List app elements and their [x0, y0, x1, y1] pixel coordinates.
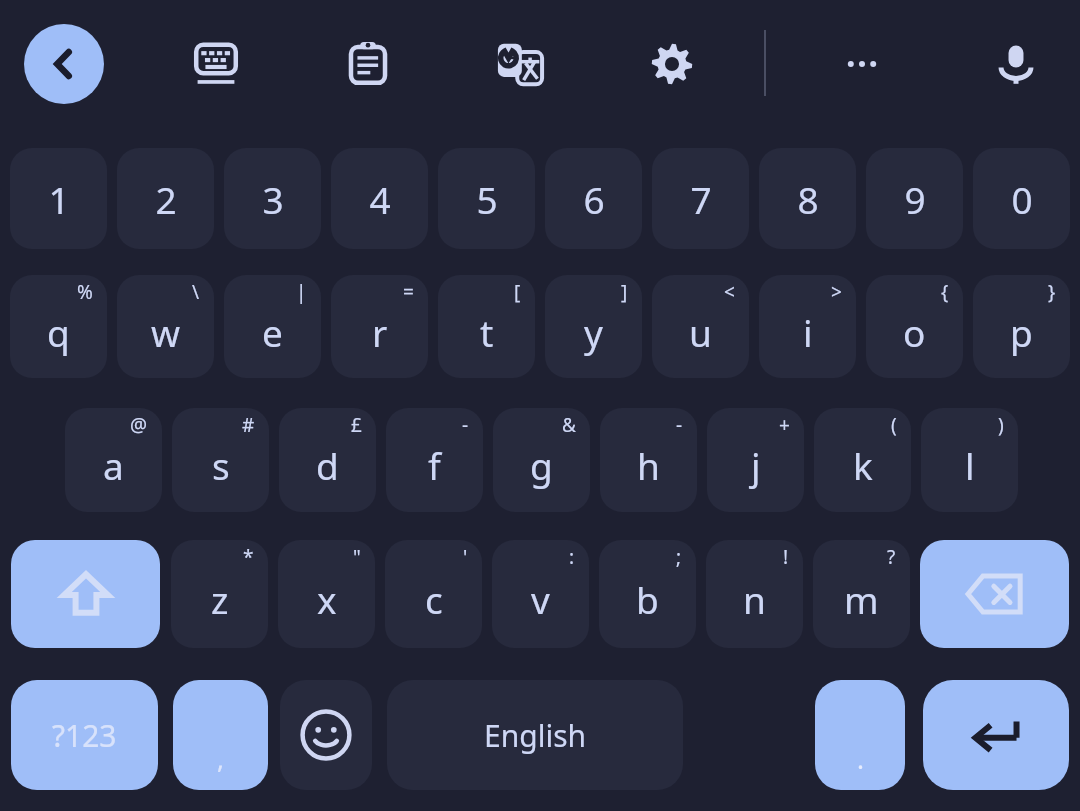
button[interactable]: English: [387, 680, 683, 790]
staticText: |: [296, 279, 307, 305]
button[interactable]: y: [545, 275, 642, 378]
staticText: %: [77, 279, 93, 305]
staticText: 7: [690, 174, 712, 224]
staticText: [: [514, 279, 521, 305]
staticText: 5: [476, 174, 498, 224]
staticText: ?: [887, 544, 896, 570]
button[interactable]: n: [706, 540, 803, 648]
button[interactable]: 2: [117, 148, 214, 249]
staticText: !: [783, 544, 789, 570]
button[interactable]: ?123: [11, 680, 158, 790]
staticText: &: [562, 412, 576, 438]
button[interactable]: 9: [866, 148, 963, 249]
button[interactable]: 1: [10, 148, 107, 249]
staticText: ;: [676, 544, 682, 570]
button[interactable]: 3: [224, 148, 321, 249]
staticText: c: [425, 574, 443, 624]
button[interactable]: f: [386, 408, 483, 512]
button[interactable]: Clipboard: [328, 24, 408, 104]
staticText: ]: [621, 279, 628, 305]
button[interactable]: Keyboard: [176, 24, 256, 104]
staticText: w: [151, 307, 181, 357]
staticText: *: [243, 544, 254, 570]
button[interactable]: j: [707, 408, 804, 512]
button[interactable]: v: [492, 540, 589, 648]
button[interactable]: a: [65, 408, 162, 512]
staticText: 6: [583, 174, 605, 224]
staticText: <: [724, 279, 735, 305]
button[interactable]: t: [438, 275, 535, 378]
button[interactable]: 0: [973, 148, 1070, 249]
staticText: -: [462, 412, 469, 438]
staticText: a: [103, 440, 124, 490]
button[interactable]: 8: [759, 148, 856, 249]
button[interactable]: Emoji: [280, 680, 372, 790]
staticText: .: [857, 741, 864, 776]
staticText: {: [941, 279, 949, 305]
staticText: 1: [48, 174, 70, 224]
button[interactable]: 6: [545, 148, 642, 249]
staticText: }: [1048, 279, 1056, 305]
staticText: i: [803, 307, 813, 357]
staticText: g: [530, 440, 553, 490]
button[interactable]: w: [117, 275, 214, 378]
button[interactable]: b: [599, 540, 696, 648]
staticText: =: [403, 279, 414, 305]
staticText: 9: [904, 174, 926, 224]
button[interactable]: 7: [652, 148, 749, 249]
button[interactable]: p: [973, 275, 1070, 378]
staticText: #: [242, 412, 255, 438]
staticText: x: [317, 574, 337, 624]
staticText: r: [372, 307, 388, 357]
button[interactable]: 5: [438, 148, 535, 249]
button[interactable]: g: [493, 408, 590, 512]
staticText: ): [998, 412, 1004, 438]
staticText: e: [262, 307, 283, 357]
button[interactable]: .: [815, 680, 905, 790]
staticText: 0: [1011, 174, 1033, 224]
button[interactable]: q: [10, 275, 107, 378]
button[interactable]: r: [331, 275, 428, 378]
staticText: l: [965, 440, 975, 490]
staticText: z: [211, 574, 229, 624]
staticText: ': [463, 544, 468, 570]
staticText: o: [903, 307, 926, 357]
button[interactable]: Translate: [480, 24, 560, 104]
button[interactable]: Enter: [923, 680, 1069, 790]
button[interactable]: Voice input: [976, 24, 1056, 104]
staticText: >: [831, 279, 842, 305]
button[interactable]: Backspace: [920, 540, 1069, 648]
button[interactable]: o: [866, 275, 963, 378]
staticText: d: [316, 440, 339, 490]
button[interactable]: k: [814, 408, 911, 512]
button[interactable]: More options: [822, 24, 902, 104]
staticText: y: [584, 307, 603, 357]
button[interactable]: d: [279, 408, 376, 512]
staticText: £: [351, 412, 362, 438]
staticText: ": [353, 544, 361, 570]
button[interactable]: m: [813, 540, 910, 648]
staticText: n: [743, 574, 766, 624]
button[interactable]: Settings: [632, 24, 712, 104]
staticText: 2: [155, 174, 177, 224]
button[interactable]: e: [224, 275, 321, 378]
button[interactable]: z: [171, 540, 268, 648]
button[interactable]: l: [921, 408, 1018, 512]
staticText: s: [212, 440, 230, 490]
button[interactable]: s: [172, 408, 269, 512]
button[interactable]: u: [652, 275, 749, 378]
button[interactable]: h: [600, 408, 697, 512]
staticText: u: [689, 307, 712, 357]
button[interactable]: Back: [24, 24, 104, 104]
button[interactable]: 4: [331, 148, 428, 249]
button[interactable]: i: [759, 275, 856, 378]
staticText: j: [751, 440, 761, 490]
staticText: v: [531, 574, 550, 624]
button[interactable]: ,: [173, 680, 268, 790]
button[interactable]: x: [278, 540, 375, 648]
button[interactable]: Shift: [11, 540, 160, 648]
button[interactable]: c: [385, 540, 482, 648]
staticText: p: [1010, 307, 1033, 357]
staticText: f: [428, 440, 441, 490]
staticText: ?123: [52, 715, 117, 756]
